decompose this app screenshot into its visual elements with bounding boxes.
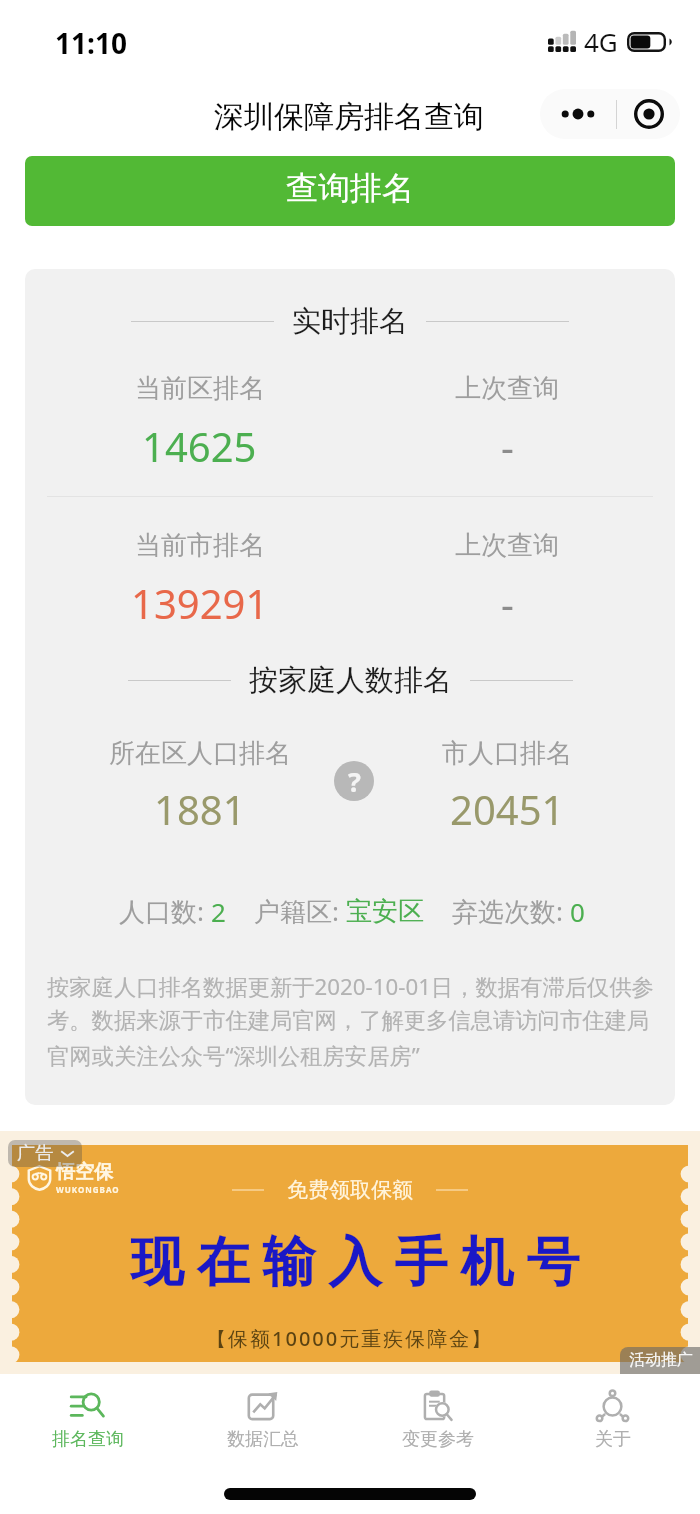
staticText: ?: [348, 763, 361, 800]
staticText: 变更参考: [402, 1428, 474, 1451]
staticText: 按家庭人口排名数据更新于2020-10-01日，数据有滞后仅供参 考。数据来源于…: [47, 971, 654, 1070]
button[interactable]: 数据汇总: [175, 1381, 350, 1481]
button[interactable]: 变更参考: [350, 1381, 525, 1481]
staticText: 排名查询: [52, 1428, 124, 1451]
staticText: 上次查询: [455, 372, 559, 405]
staticText: 按家庭人数排名: [249, 662, 452, 699]
staticText: 免费领取保额: [287, 1177, 413, 1203]
staticText: 活动推广: [629, 1350, 693, 1370]
staticText: 0: [570, 894, 585, 929]
staticText: 4G: [584, 24, 618, 59]
staticText: 当前区排名: [135, 372, 265, 405]
staticText: 实时排名: [292, 303, 408, 340]
button[interactable]: 广告: [17, 1142, 75, 1165]
button[interactable]: Help: [334, 761, 374, 801]
staticText: 悟空保: [56, 1160, 113, 1184]
button[interactable]: Close mini program: [617, 89, 680, 139]
staticText: 14625: [142, 419, 257, 473]
staticText: 市人口排名: [442, 737, 572, 770]
button[interactable]: 查询排名: [25, 156, 675, 226]
button[interactable]: 活动推广: [629, 1350, 693, 1370]
staticText: 户籍区:: [254, 893, 346, 929]
staticText: 20451: [450, 782, 565, 836]
staticText: 139291: [131, 576, 269, 630]
staticText: 弃选次数:: [452, 893, 570, 929]
button[interactable]: 排名查询: [0, 1381, 175, 1481]
button[interactable]: More options: [540, 89, 616, 139]
button[interactable]: 免费领取保额: [0, 1131, 700, 1374]
staticText: 深圳保障房排名查询: [214, 98, 484, 136]
staticText: 广告: [17, 1142, 53, 1165]
staticText: 宝安区: [346, 895, 424, 928]
button[interactable]: 关于: [525, 1381, 700, 1481]
staticText: 所在区人口排名: [109, 737, 291, 770]
staticText: 上次查询: [455, 529, 559, 562]
staticText: WUKONGBAO: [56, 1184, 120, 1195]
staticText: 关于: [595, 1428, 631, 1451]
staticText: 【保额10000元重疾保障金】: [206, 1325, 494, 1352]
staticText: 现在输入手机号: [124, 1229, 586, 1296]
staticText: -: [501, 419, 514, 473]
staticText: 1881: [154, 782, 246, 836]
staticText: 当前市排名: [135, 529, 265, 562]
staticText: 查询排名: [286, 168, 414, 208]
staticText: 人口数:: [119, 893, 211, 929]
staticText: 11:10: [55, 24, 127, 62]
staticText: -: [501, 576, 514, 630]
staticText: 数据汇总: [227, 1428, 299, 1451]
staticText: 2: [211, 894, 226, 929]
